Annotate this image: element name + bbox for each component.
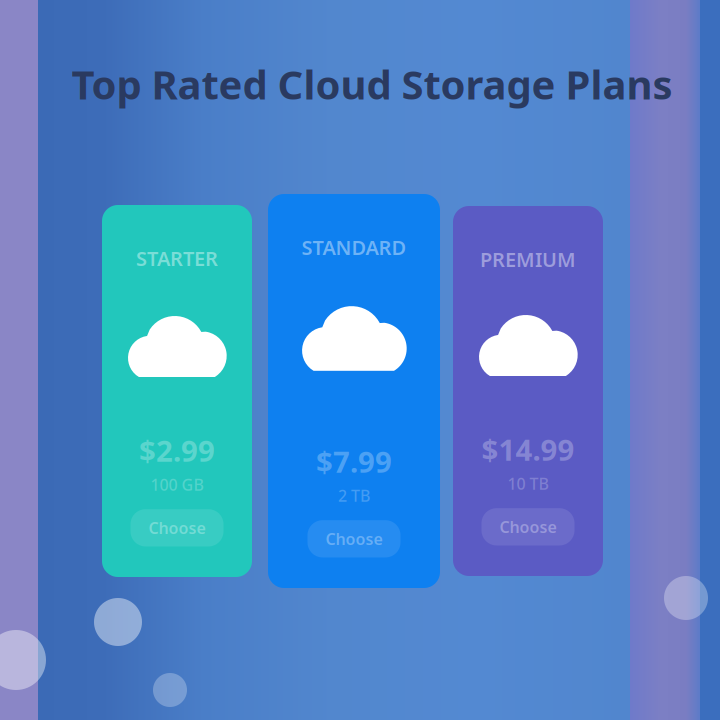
staticText: PREMIUM	[480, 246, 576, 273]
button[interactable]: STANDARD	[268, 194, 440, 588]
staticText: $7.99	[316, 442, 392, 481]
staticText: $14.99	[481, 430, 574, 469]
staticText: Top Rated Cloud Storage Plans	[71, 57, 672, 110]
staticText: 100 GB	[150, 474, 203, 495]
staticText: Choose	[499, 516, 556, 537]
staticText: 2 TB	[338, 485, 370, 506]
staticText: STANDARD	[301, 234, 406, 261]
button[interactable]: STARTER	[102, 205, 252, 577]
staticText: 10 TB	[507, 473, 548, 494]
staticText: STARTER	[136, 245, 218, 272]
staticText: $2.99	[139, 431, 215, 470]
staticText: Choose	[148, 517, 205, 538]
staticText: Choose	[325, 528, 382, 549]
button[interactable]: PREMIUM	[453, 206, 603, 576]
